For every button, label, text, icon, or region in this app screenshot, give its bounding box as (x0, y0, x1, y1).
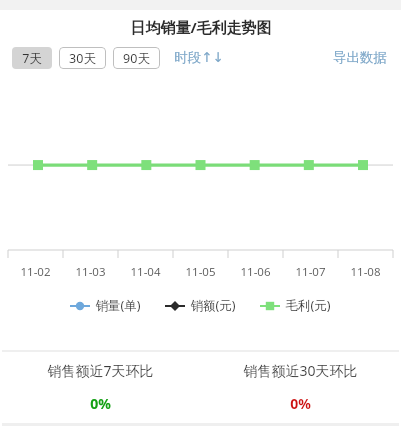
staticText: 销额(元) (190, 297, 236, 314)
staticText: 11-04 (130, 264, 161, 280)
button[interactable]: 30天 (59, 47, 106, 69)
button[interactable]: 销额(元) (164, 295, 237, 316)
button[interactable]: 毛利(元) (259, 295, 332, 316)
button[interactable]: 销售额近30天环比 (200, 352, 401, 421)
staticText: 时段↑↓ (174, 49, 224, 66)
staticText: 11-02 (20, 264, 51, 280)
staticText: 0% (90, 394, 111, 413)
staticText: 11-07 (295, 264, 326, 280)
staticText: 销量(单) (95, 297, 141, 314)
staticText: 0% (290, 394, 311, 413)
staticText: 日均销量/毛利走势图 (130, 17, 272, 37)
button[interactable]: 90天 (113, 47, 160, 69)
staticText: 导出数据 (333, 49, 387, 66)
staticText: 销售额近30天环比 (243, 361, 358, 380)
button[interactable]: 销售额近7天环比 (0, 352, 200, 421)
button[interactable]: 销量(单) (69, 295, 142, 316)
button[interactable]: 导出数据 (331, 46, 389, 69)
staticText: 11-03 (75, 264, 106, 280)
button[interactable]: 7天 (12, 47, 52, 69)
staticText: 11-05 (185, 264, 216, 280)
staticText: 毛利(元) (285, 297, 331, 314)
staticText: 30天 (69, 50, 96, 67)
button[interactable]: 时段↑↓ (172, 46, 226, 69)
staticText: 11-08 (350, 264, 381, 280)
staticText: 销售额近7天环比 (47, 361, 154, 380)
staticText: 7天 (22, 50, 42, 67)
staticText: 11-06 (240, 264, 271, 280)
staticText: 90天 (123, 50, 150, 67)
